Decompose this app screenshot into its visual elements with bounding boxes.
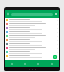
button[interactable] xyxy=(5,54,59,58)
button[interactable] xyxy=(5,34,59,38)
button[interactable] xyxy=(5,50,59,54)
button[interactable] xyxy=(5,26,59,30)
button[interactable]: Compose new message xyxy=(53,55,57,59)
button[interactable]: Open navigation menu xyxy=(6,12,10,16)
button[interactable] xyxy=(5,46,59,50)
button[interactable]: Meet xyxy=(45,60,59,67)
button[interactable]: Chat xyxy=(18,60,31,67)
button[interactable]: Spaces xyxy=(31,60,45,67)
button[interactable] xyxy=(5,38,59,42)
button[interactable]: Search mail xyxy=(11,13,53,16)
button[interactable] xyxy=(5,42,59,46)
button[interactable] xyxy=(5,30,59,34)
button[interactable] xyxy=(5,22,59,26)
button[interactable]: Mail xyxy=(5,60,18,67)
button[interactable]: Account xyxy=(54,12,58,16)
button[interactable] xyxy=(5,18,59,22)
